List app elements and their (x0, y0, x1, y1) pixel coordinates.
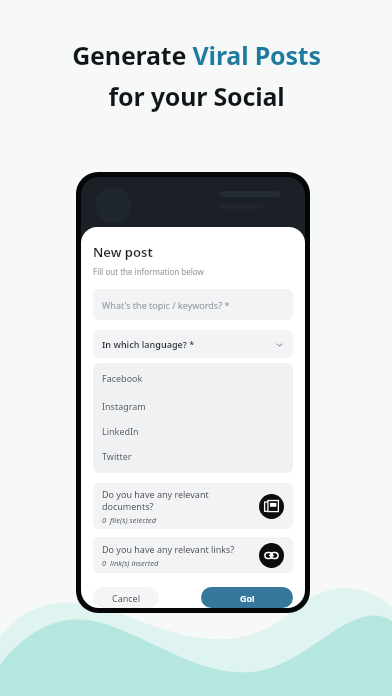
staticText: Instagram (102, 400, 146, 412)
button[interactable]: In which language? * (93, 330, 293, 358)
staticText: Generate Viral Posts (72, 38, 321, 72)
button[interactable]: Facebook (102, 363, 284, 393)
staticText: In which language? * (102, 338, 195, 350)
button[interactable]: Do you have any relevant links? (93, 537, 293, 573)
staticText: for your Social (108, 79, 285, 113)
button[interactable]: What's the topic / keywords? * (93, 289, 293, 320)
button[interactable]: Attach documents (259, 494, 284, 519)
button[interactable]: Go! (201, 587, 293, 608)
button[interactable]: Twitter (102, 443, 284, 468)
staticText: Do you have any relevant (102, 488, 209, 500)
button[interactable]: Instagram (102, 393, 284, 418)
staticText: documents? (102, 500, 154, 512)
staticText: 0 link(s) inserted (102, 558, 159, 568)
staticText: New post (93, 243, 153, 261)
staticText: LinkedIn (102, 425, 139, 437)
button[interactable]: Cancel (93, 587, 159, 608)
staticText: Facebook (102, 372, 143, 384)
staticText: Twitter (102, 450, 132, 462)
button[interactable]: Attach links (259, 543, 284, 568)
button[interactable]: LinkedIn (102, 418, 284, 443)
staticText: Fill out the information below (93, 266, 204, 277)
button[interactable]: Do you have any relevant (93, 483, 293, 529)
staticText: Do you have any relevant links? (102, 543, 235, 555)
staticText: What's the topic / keywords? * (102, 299, 230, 311)
staticText: 0 file(s) selected (102, 515, 157, 525)
staticText: Cancel (112, 592, 141, 604)
staticText: Go! (240, 592, 255, 604)
